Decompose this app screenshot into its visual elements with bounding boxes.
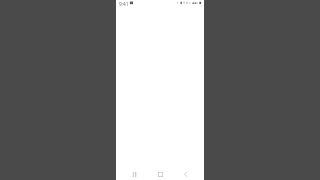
button[interactable]: Home <box>155 168 165 180</box>
staticText: 9:41 <box>119 1 129 8</box>
button[interactable]: Recent apps <box>129 168 139 180</box>
button[interactable]: Back <box>180 168 190 180</box>
